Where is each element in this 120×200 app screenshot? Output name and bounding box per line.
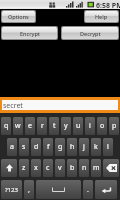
staticText: m (93, 163, 100, 173)
staticText: g (58, 142, 63, 152)
staticText: b (70, 163, 75, 173)
staticText: Decrypt (80, 30, 101, 37)
staticText: e (28, 121, 32, 131)
button[interactable]: n (79, 159, 89, 177)
staticText: ?123 (5, 186, 18, 194)
staticText: d (34, 142, 39, 152)
staticText: n (82, 163, 87, 173)
staticText: u (76, 121, 81, 131)
button[interactable]: Help (85, 11, 118, 22)
staticText: , (28, 185, 30, 195)
staticText: c (46, 163, 50, 173)
button[interactable]: l (103, 138, 113, 156)
staticText: x (34, 163, 38, 173)
button[interactable]: s (19, 138, 29, 156)
staticText: q (4, 121, 9, 131)
button[interactable]: u (73, 117, 83, 135)
staticText: 6:58 PM (96, 1, 120, 10)
button[interactable]: q (1, 117, 11, 135)
button[interactable]: e (25, 117, 35, 135)
staticText: v (58, 163, 62, 173)
button[interactable]: h (67, 138, 77, 156)
staticText: t (53, 121, 56, 131)
staticText: y (64, 121, 68, 131)
button[interactable]: v (55, 159, 65, 177)
button[interactable]: secret (0, 97, 120, 113)
staticText: z (22, 163, 26, 173)
staticText: r (41, 121, 44, 131)
button[interactable]: y (61, 117, 71, 135)
button[interactable]: w (13, 117, 23, 135)
button[interactable]: z (19, 159, 29, 177)
button[interactable]: a (7, 138, 17, 156)
button[interactable]: Delete (103, 159, 119, 177)
staticText: secret (3, 101, 23, 111)
button[interactable]: . (83, 180, 93, 199)
staticText: Encrypt (20, 30, 40, 37)
staticText: h (70, 142, 75, 152)
button[interactable]: f (43, 138, 53, 156)
staticText: a (10, 142, 14, 152)
staticText: i (89, 121, 91, 131)
staticText: p (112, 121, 117, 131)
button[interactable]: p (109, 117, 119, 135)
button[interactable]: Options (2, 11, 35, 22)
button[interactable]: j (79, 138, 89, 156)
staticText: l (107, 142, 109, 152)
button[interactable]: m (91, 159, 101, 177)
button[interactable]: t (49, 117, 59, 135)
staticText: w (15, 121, 21, 131)
button[interactable]: b (67, 159, 77, 177)
button[interactable]: o (97, 117, 107, 135)
staticText: Help (95, 13, 108, 20)
button[interactable]: g (55, 138, 65, 156)
button[interactable]: r (37, 117, 47, 135)
button[interactable]: k (91, 138, 101, 156)
button[interactable]: i (85, 117, 95, 135)
button[interactable]: , (24, 180, 34, 199)
staticText: Options (8, 13, 29, 20)
staticText: s (22, 142, 26, 152)
staticText: . (87, 185, 89, 195)
staticText: o (100, 121, 105, 131)
staticText: k (94, 142, 98, 152)
button[interactable]: Shift (1, 159, 17, 177)
button[interactable]: Encrypt (2, 27, 57, 39)
button[interactable]: d (31, 138, 41, 156)
button[interactable]: Decrypt (62, 27, 118, 39)
staticText: j (83, 142, 85, 152)
staticText: f (47, 142, 50, 152)
button[interactable]: c (43, 159, 53, 177)
button[interactable]: Enter (95, 180, 117, 199)
button[interactable]: Space (36, 180, 81, 199)
button[interactable]: ?123 (1, 180, 22, 199)
button[interactable]: x (31, 159, 41, 177)
